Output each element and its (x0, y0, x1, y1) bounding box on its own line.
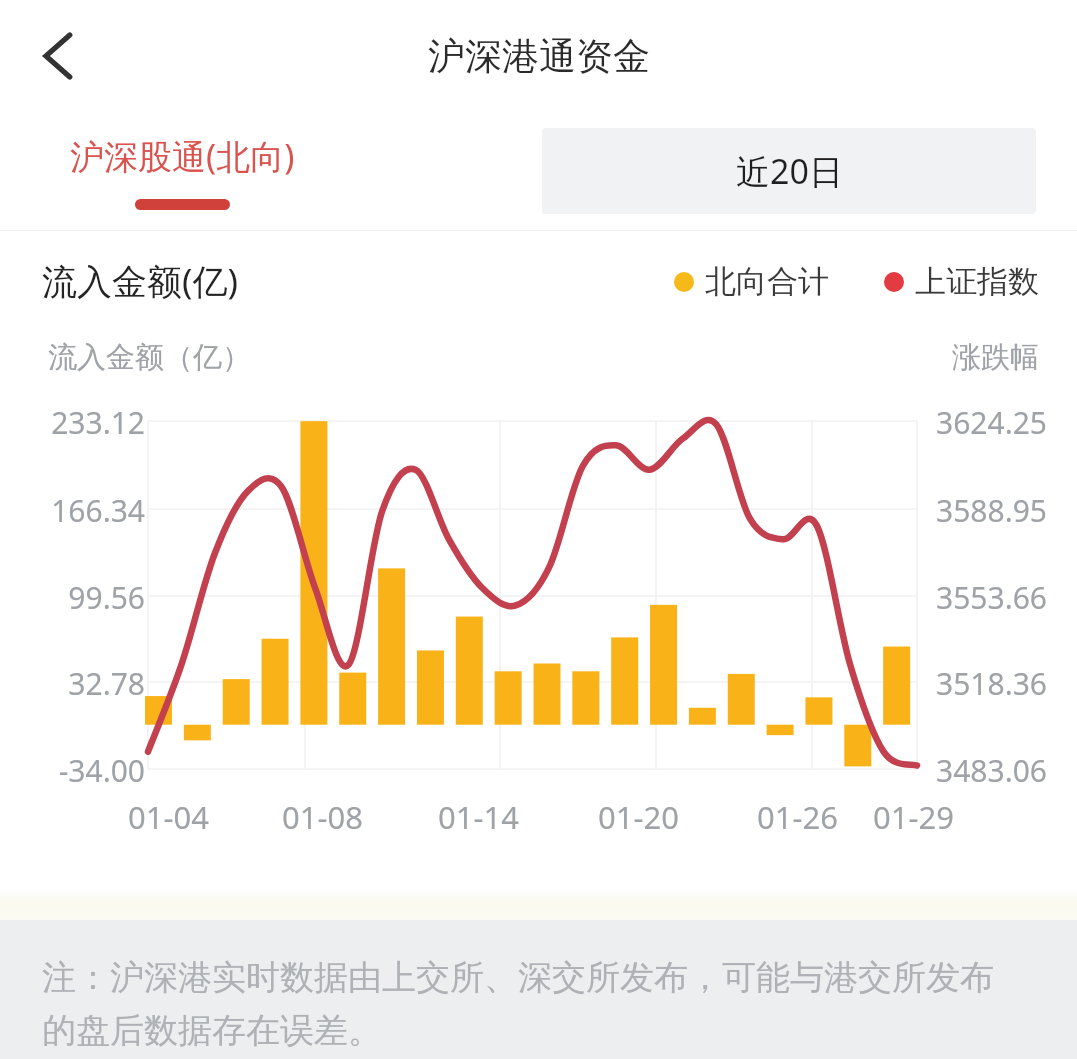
staticText: -34.00 (40, 750, 145, 791)
button[interactable]: 近20日 (542, 128, 1036, 214)
staticText: 166.34 (40, 490, 145, 531)
staticText: 流入金额（亿） (48, 339, 251, 376)
staticText: 3624.25 (936, 402, 1047, 443)
staticText: 北向合计 (705, 262, 829, 301)
staticText: 01-20 (598, 796, 679, 838)
staticText: 01-04 (128, 796, 209, 838)
staticText: 01-26 (757, 796, 838, 838)
staticText: 3518.36 (936, 663, 1047, 704)
staticText: 沪深股通(北向) (70, 133, 295, 179)
staticText: 近20日 (736, 148, 843, 194)
staticText: 01-08 (282, 796, 363, 838)
staticText: 3483.06 (936, 750, 1047, 791)
button[interactable]: 沪深股通(北向) (70, 133, 295, 210)
button[interactable]: Back (18, 21, 88, 91)
staticText: 233.12 (40, 402, 145, 443)
staticText: 沪深港通资金 (428, 33, 650, 80)
staticText: 01-14 (438, 796, 519, 838)
staticText: 32.78 (40, 663, 145, 704)
staticText: 流入金额(亿) (42, 257, 239, 305)
staticText: 99.56 (40, 577, 145, 618)
staticText: 上证指数 (915, 262, 1039, 301)
staticText: 3588.95 (936, 490, 1047, 531)
staticText: 涨跌幅 (952, 339, 1039, 376)
staticText: 3553.66 (936, 577, 1047, 618)
staticText: 01-29 (873, 796, 954, 838)
staticText: 注：沪深港实时数据由上交所、深交所发布，可能与港交所发布 的盘后数据存在误差。 (42, 956, 994, 1052)
